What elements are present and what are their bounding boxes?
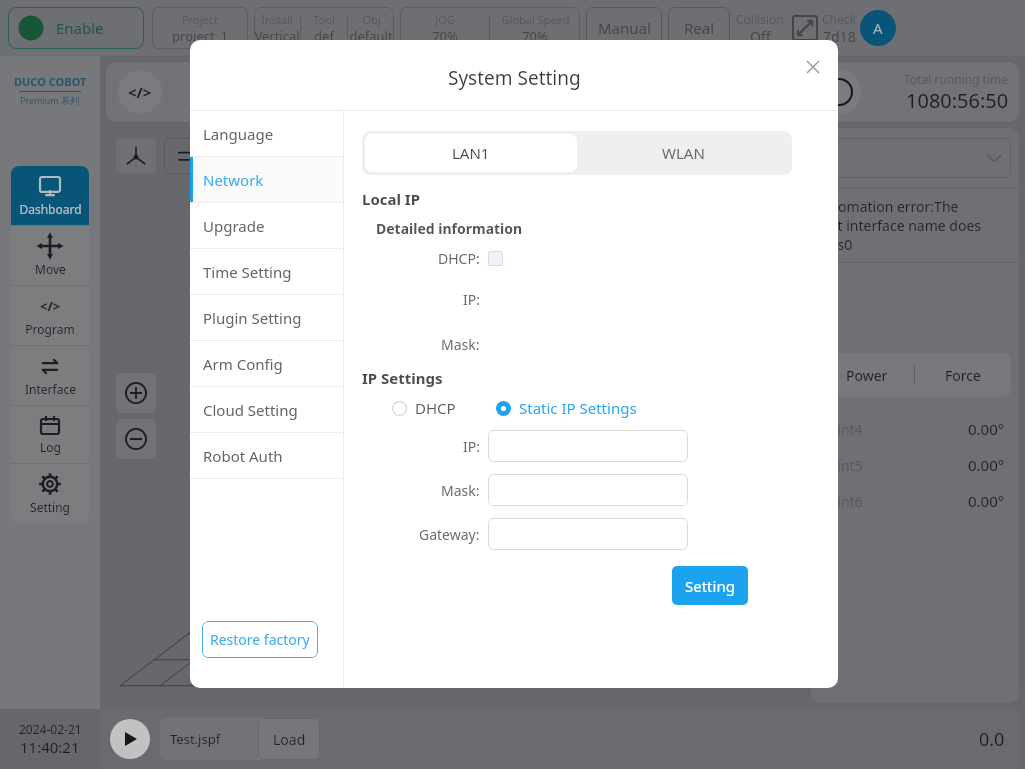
staticText: Plugin Setting bbox=[203, 308, 302, 328]
staticText: Robot Auth bbox=[203, 446, 283, 466]
button[interactable]: Plugin Setting bbox=[190, 295, 343, 340]
staticText: Check bbox=[822, 11, 856, 27]
staticText: Global Speed bbox=[501, 12, 570, 27]
staticText: Joint5 bbox=[825, 456, 863, 475]
button[interactable]: Fullscreen bbox=[792, 15, 818, 41]
button[interactable]: Static IP Settings bbox=[496, 398, 637, 418]
staticText: Obj bbox=[362, 12, 381, 27]
button[interactable]: Enable bbox=[8, 7, 144, 49]
staticText: Detailed information bbox=[376, 219, 523, 238]
button[interactable]: Project bbox=[152, 7, 248, 49]
button[interactable]: Robot Auth bbox=[190, 433, 343, 478]
staticText: Install bbox=[261, 12, 293, 27]
staticText: Network bbox=[203, 170, 264, 190]
button[interactable] bbox=[488, 518, 688, 550]
button[interactable]: Power bbox=[819, 353, 914, 397]
staticText: Power bbox=[846, 366, 888, 385]
staticText: Move bbox=[35, 261, 66, 277]
button[interactable]: Move bbox=[11, 226, 89, 285]
staticText: Vertical bbox=[254, 27, 300, 45]
button[interactable] bbox=[488, 430, 688, 462]
button[interactable]: Interface bbox=[11, 346, 89, 405]
staticText: System Setting bbox=[448, 65, 581, 91]
button[interactable]: Arm Config bbox=[190, 341, 343, 386]
staticText: o3s0 bbox=[821, 235, 853, 254]
staticText: WLAN bbox=[662, 143, 705, 163]
button[interactable]: Real bbox=[668, 7, 730, 49]
staticText: Off bbox=[750, 27, 771, 46]
staticText: Force bbox=[945, 366, 981, 385]
button[interactable]: Program bbox=[118, 70, 162, 114]
staticText: project_1 bbox=[172, 27, 228, 45]
staticText: 0.0 bbox=[979, 727, 1005, 752]
button[interactable]: Manual bbox=[586, 7, 662, 49]
button[interactable]: Setting bbox=[672, 566, 748, 605]
staticText: </> bbox=[40, 297, 61, 315]
button[interactable] bbox=[488, 474, 688, 506]
staticText: 7d18 bbox=[823, 27, 856, 46]
staticText: Mask: bbox=[441, 481, 480, 500]
staticText: Static IP Settings bbox=[519, 398, 637, 418]
button[interactable]: Dashboard bbox=[11, 166, 89, 225]
button[interactable]: A bbox=[860, 10, 896, 46]
staticText: Dashboard bbox=[19, 201, 82, 217]
staticText: Interface bbox=[25, 381, 76, 397]
staticText: 1080:56:50 bbox=[906, 87, 1009, 114]
staticText: Local IP bbox=[362, 189, 421, 209]
staticText: Log bbox=[40, 439, 61, 455]
button[interactable]: Close bbox=[802, 56, 824, 78]
staticText: Manual bbox=[598, 18, 651, 38]
staticText: Setting bbox=[685, 576, 735, 596]
staticText: Setting bbox=[30, 499, 70, 515]
staticText: DHCP: bbox=[438, 249, 480, 268]
button[interactable]: Path bbox=[164, 138, 208, 174]
button[interactable]: Load bbox=[258, 718, 320, 760]
button[interactable]: Time Setting bbox=[190, 249, 343, 294]
button[interactable]: Language bbox=[190, 111, 343, 156]
staticText: Project bbox=[182, 12, 218, 27]
staticText: Language bbox=[203, 124, 274, 144]
staticText: Gateway: bbox=[419, 525, 480, 544]
button[interactable] bbox=[819, 138, 1011, 178]
button[interactable]: </> bbox=[11, 286, 89, 345]
button[interactable]: Restore factory bbox=[202, 621, 318, 658]
staticText: Joint6 bbox=[825, 492, 863, 511]
button[interactable]: Zoom out bbox=[116, 419, 156, 459]
button[interactable]: Cloud Setting bbox=[190, 387, 343, 432]
staticText: 11:40:21 bbox=[20, 737, 80, 757]
button[interactable]: WLAN bbox=[577, 134, 789, 172]
button[interactable] bbox=[488, 251, 503, 266]
button[interactable]: Install bbox=[254, 7, 394, 49]
button[interactable]: Zoom in bbox=[116, 373, 156, 413]
button[interactable]: LAN1 bbox=[365, 134, 577, 172]
button[interactable]: Setting bbox=[11, 464, 89, 523]
staticText: Tool bbox=[313, 12, 335, 27]
button[interactable]: Network bbox=[190, 157, 343, 202]
button[interactable]: Axis view bbox=[116, 138, 156, 174]
staticText: Upgrade bbox=[203, 216, 265, 236]
staticText: IP Settings bbox=[362, 368, 443, 388]
staticText: IP: bbox=[463, 437, 480, 456]
staticText: Premium 系列 bbox=[20, 94, 80, 106]
button[interactable]: Play bbox=[110, 719, 150, 759]
staticText: Test.jspf bbox=[170, 730, 221, 748]
staticText: Enable bbox=[56, 18, 104, 38]
staticText: 2024-02-21 bbox=[19, 721, 82, 737]
staticText: Cloud Setting bbox=[203, 400, 298, 420]
staticText: DUCO COBOT bbox=[14, 74, 87, 89]
staticText: Real bbox=[684, 18, 715, 38]
staticText: Arm Config bbox=[203, 354, 283, 374]
staticText: Program bbox=[25, 321, 75, 337]
staticText: Restore factory bbox=[210, 630, 310, 649]
staticText: </> bbox=[128, 82, 152, 102]
button[interactable]: JOG bbox=[400, 7, 580, 49]
staticText: 0.00° bbox=[968, 455, 1005, 475]
button[interactable]: Force bbox=[915, 353, 1011, 397]
staticText: 0.00° bbox=[968, 419, 1005, 439]
staticText: net interface name does bbox=[821, 216, 981, 235]
button[interactable]: Log bbox=[11, 406, 89, 463]
button[interactable]: DHCP bbox=[392, 398, 456, 418]
staticText: 0.00° bbox=[968, 491, 1005, 511]
button[interactable]: Upgrade bbox=[190, 203, 343, 248]
staticText: 70% bbox=[522, 27, 548, 45]
